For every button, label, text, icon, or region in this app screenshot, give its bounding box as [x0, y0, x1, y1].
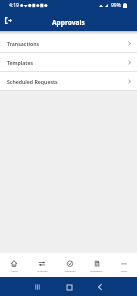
button[interactable]: Home: [63, 281, 75, 293]
staticText: Scheduled Requests: [7, 78, 58, 85]
button[interactable]: Recent apps: [31, 281, 43, 293]
staticText: Statement...: [90, 269, 104, 272]
button[interactable]: Transactions: [0, 34, 137, 53]
button[interactable]: Approvals: [56, 253, 83, 277]
staticText: Home: [11, 269, 18, 272]
button[interactable]: Statement...: [83, 253, 110, 277]
button[interactable]: Transfers: [28, 253, 56, 277]
staticText: More: [121, 269, 127, 272]
staticText: Transfers: [37, 269, 48, 272]
staticText: Templates: [7, 59, 34, 66]
staticText: Approvals: [64, 269, 76, 272]
button[interactable]: More: [110, 253, 137, 277]
staticText: 99%: [111, 2, 121, 9]
button[interactable]: Templates: [0, 53, 137, 72]
staticText: 4:19: [9, 2, 19, 9]
button[interactable]: Scheduled Requests: [0, 72, 137, 91]
button[interactable]: Back: [94, 281, 106, 293]
staticText: Approvals: [52, 18, 85, 27]
button[interactable]: Log out: [1, 13, 15, 27]
staticText: Transactions: [7, 40, 40, 47]
button[interactable]: Home: [0, 253, 28, 277]
